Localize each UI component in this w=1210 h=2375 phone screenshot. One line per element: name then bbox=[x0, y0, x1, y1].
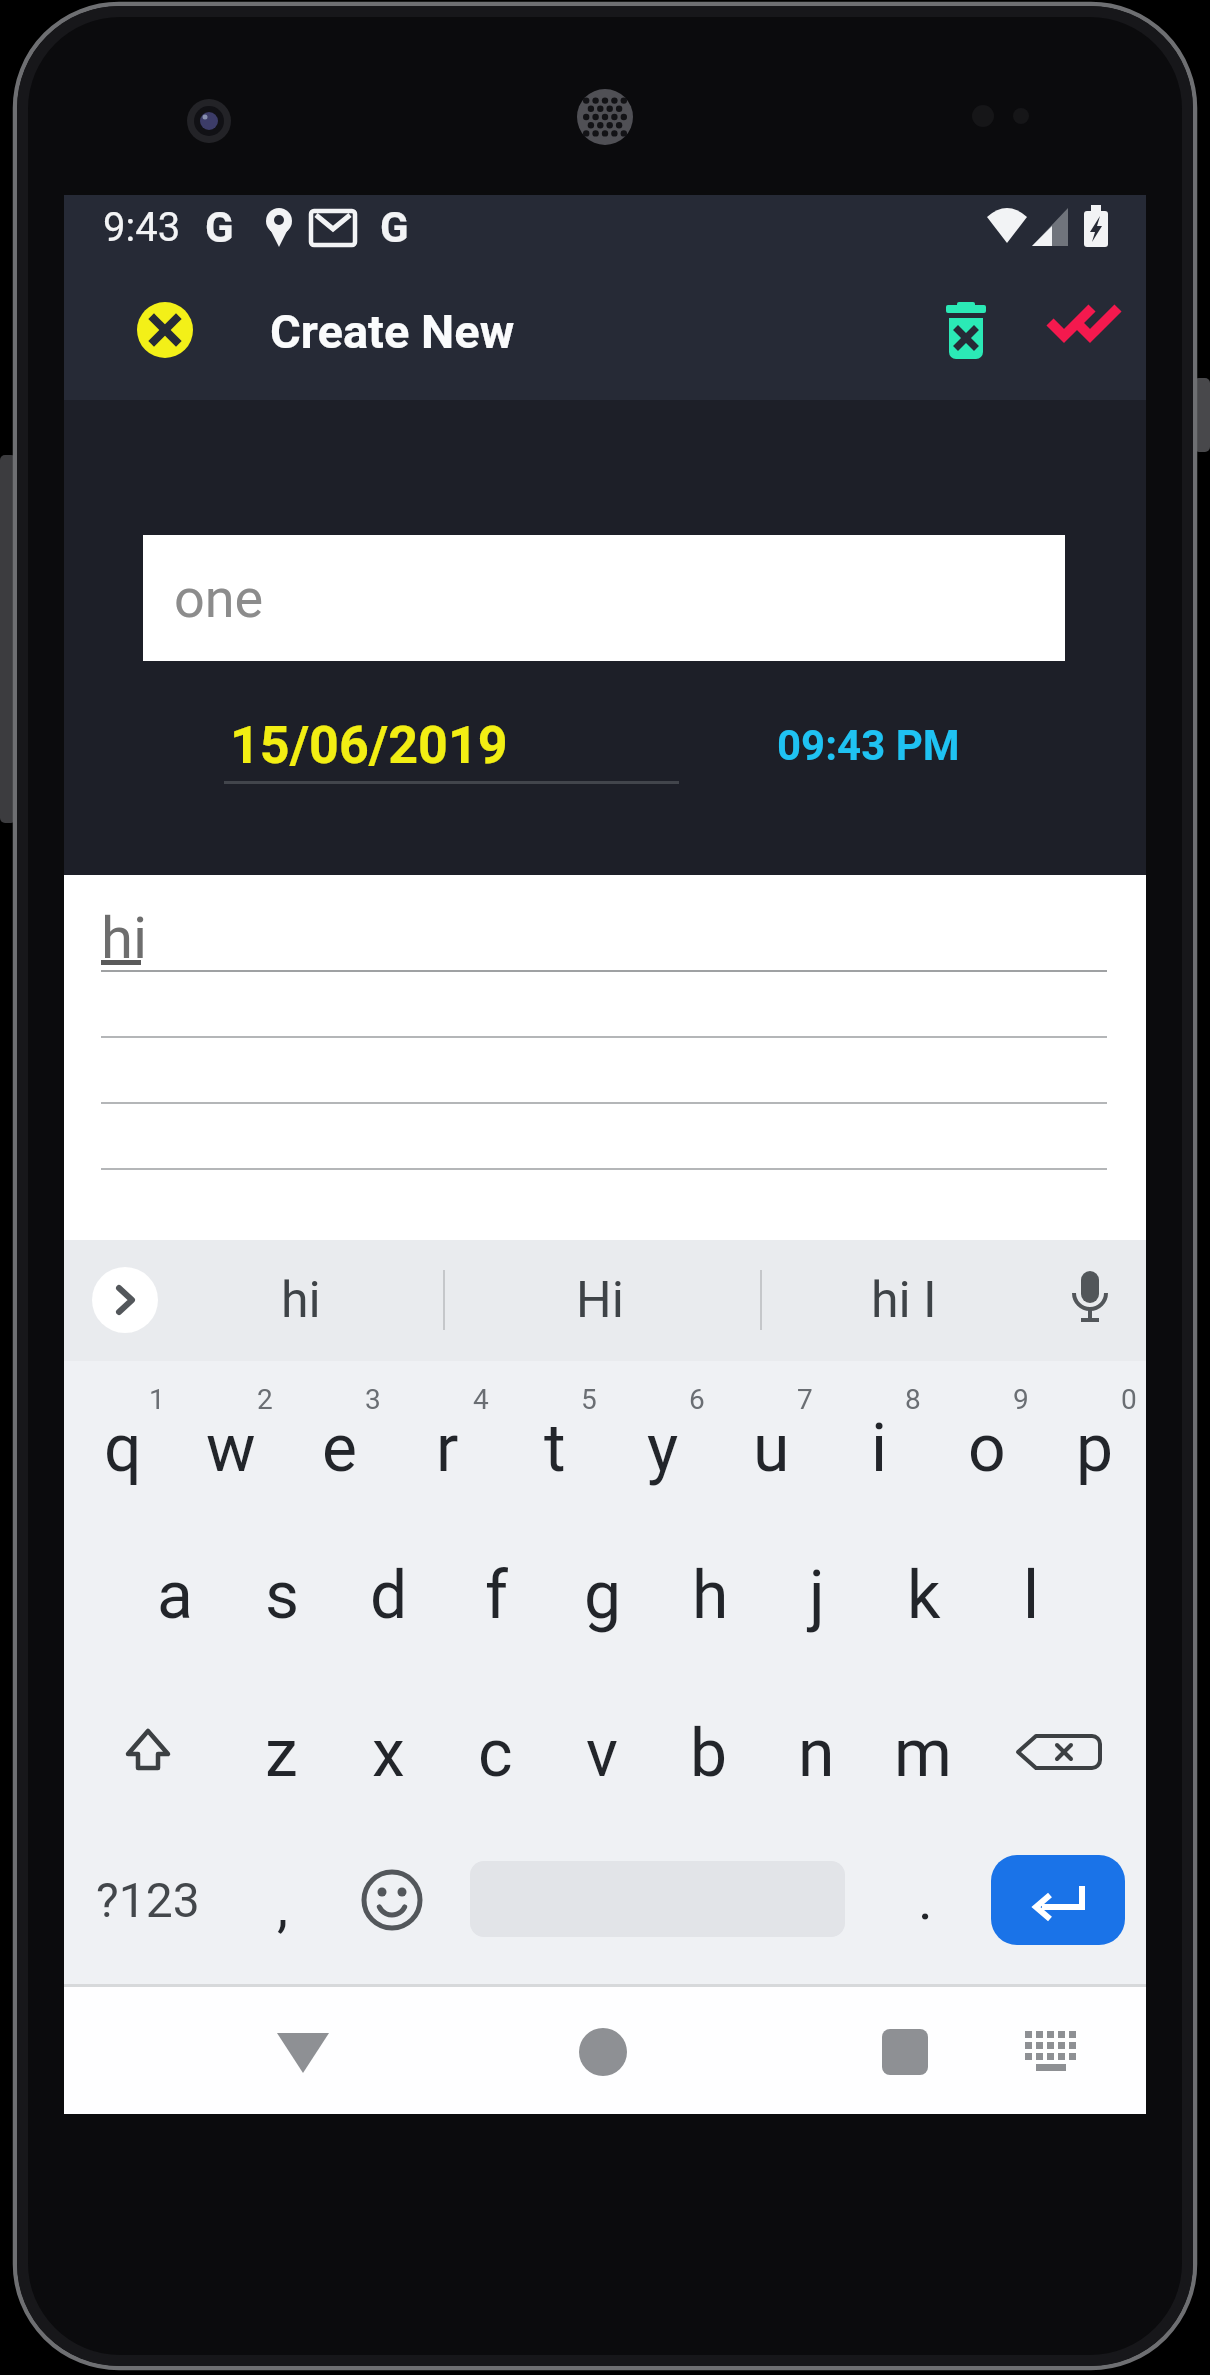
staticText: d bbox=[370, 1557, 408, 1634]
button[interactable]: l bbox=[978, 1543, 1084, 1647]
button[interactable]: p bbox=[1041, 1393, 1149, 1503]
staticText: c bbox=[478, 1715, 513, 1792]
button[interactable]: 09:43 PM bbox=[718, 700, 1018, 790]
button[interactable]: f bbox=[443, 1543, 549, 1647]
staticText: r bbox=[436, 1410, 459, 1487]
button[interactable]: z bbox=[228, 1701, 334, 1805]
staticText: 3 bbox=[365, 1383, 381, 1416]
staticText: 1 bbox=[149, 1383, 165, 1416]
staticText: l bbox=[1023, 1557, 1040, 1634]
staticText: u bbox=[753, 1410, 790, 1487]
button[interactable]: 15/06/2019 bbox=[219, 695, 519, 795]
staticText: w bbox=[206, 1410, 256, 1487]
staticText: s bbox=[265, 1557, 300, 1634]
button[interactable]: g bbox=[550, 1543, 656, 1647]
button[interactable]: hi bbox=[201, 1250, 401, 1350]
staticText: k bbox=[907, 1557, 941, 1634]
staticText: 7 bbox=[797, 1383, 813, 1416]
staticText: , bbox=[277, 1874, 289, 1940]
staticText: 9:43 bbox=[103, 204, 181, 251]
staticText: G bbox=[205, 203, 234, 252]
staticText: e bbox=[322, 1410, 357, 1487]
staticText: one bbox=[174, 567, 264, 630]
button[interactable]: hi I bbox=[804, 1250, 1004, 1350]
button[interactable]: v bbox=[549, 1701, 655, 1805]
button[interactable] bbox=[579, 2028, 627, 2076]
button[interactable]: m bbox=[870, 1701, 976, 1805]
button[interactable]: j bbox=[764, 1543, 870, 1647]
button[interactable] bbox=[1021, 2025, 1081, 2077]
staticText: v bbox=[586, 1715, 618, 1792]
staticText: 9 bbox=[1013, 1383, 1029, 1416]
staticText: G bbox=[380, 203, 409, 252]
button[interactable]: . bbox=[875, 1850, 975, 1950]
button[interactable] bbox=[1014, 1712, 1106, 1792]
staticText: i bbox=[871, 1410, 888, 1487]
button[interactable]: hi bbox=[101, 890, 501, 985]
button[interactable]: a bbox=[122, 1543, 228, 1647]
button[interactable]: e bbox=[285, 1393, 393, 1503]
button[interactable] bbox=[137, 302, 193, 358]
button[interactable]: s bbox=[229, 1543, 335, 1647]
staticText: x bbox=[372, 1715, 405, 1792]
staticText: . bbox=[918, 1867, 933, 1933]
staticText: a bbox=[157, 1557, 193, 1634]
button[interactable]: one bbox=[143, 535, 1065, 661]
staticText: n bbox=[798, 1715, 835, 1792]
staticText: 15/06/2019 bbox=[230, 715, 508, 776]
button[interactable] bbox=[1039, 295, 1129, 365]
staticText: ?123 bbox=[96, 1872, 200, 1928]
staticText: Create New bbox=[270, 304, 515, 359]
staticText: h bbox=[692, 1557, 729, 1634]
staticText: p bbox=[1076, 1410, 1114, 1487]
button[interactable]: t bbox=[501, 1393, 609, 1503]
button[interactable]: k bbox=[871, 1543, 977, 1647]
button[interactable]: ?123 bbox=[83, 1850, 213, 1950]
staticText: f bbox=[485, 1557, 508, 1634]
button[interactable]: o bbox=[933, 1393, 1041, 1503]
button[interactable] bbox=[358, 1866, 426, 1934]
button[interactable] bbox=[273, 2027, 333, 2077]
button[interactable]: h bbox=[657, 1543, 763, 1647]
button[interactable] bbox=[938, 301, 994, 361]
staticText: hi bbox=[281, 1271, 321, 1330]
button[interactable] bbox=[92, 1267, 158, 1333]
staticText: 8 bbox=[905, 1383, 921, 1416]
button[interactable]: r bbox=[393, 1393, 501, 1503]
button[interactable]: n bbox=[763, 1701, 869, 1805]
button[interactable] bbox=[108, 1712, 188, 1792]
staticText: 5 bbox=[581, 1383, 597, 1416]
staticText: b bbox=[690, 1715, 728, 1792]
staticText: Hi bbox=[576, 1271, 624, 1330]
button[interactable]: b bbox=[656, 1701, 762, 1805]
button[interactable] bbox=[1060, 1267, 1120, 1333]
staticText: j bbox=[809, 1557, 825, 1634]
staticText: o bbox=[968, 1410, 1006, 1487]
staticText: y bbox=[647, 1410, 679, 1487]
staticText: q bbox=[104, 1410, 142, 1487]
button[interactable]: w bbox=[177, 1393, 285, 1503]
button[interactable]: d bbox=[336, 1543, 442, 1647]
staticText: 09:43 PM bbox=[777, 721, 960, 770]
button[interactable] bbox=[991, 1855, 1125, 1945]
button[interactable]: Hi bbox=[500, 1250, 700, 1350]
button[interactable]: u bbox=[717, 1393, 825, 1503]
staticText: hi I bbox=[871, 1271, 937, 1330]
button[interactable]: c bbox=[442, 1701, 548, 1805]
button[interactable]: i bbox=[825, 1393, 933, 1503]
staticText: z bbox=[265, 1715, 298, 1792]
staticText: hi bbox=[101, 904, 148, 972]
button[interactable]: , bbox=[233, 1857, 333, 1957]
staticText: t bbox=[544, 1410, 566, 1487]
button[interactable]: q bbox=[69, 1393, 177, 1503]
staticText: m bbox=[894, 1715, 952, 1792]
staticText: 0 bbox=[1121, 1383, 1137, 1416]
staticText: g bbox=[584, 1557, 622, 1634]
button[interactable]: x bbox=[335, 1701, 441, 1805]
staticText: 4 bbox=[473, 1383, 489, 1416]
button[interactable]: y bbox=[609, 1393, 717, 1503]
staticText: 6 bbox=[689, 1383, 705, 1416]
button[interactable] bbox=[882, 2029, 928, 2075]
staticText: 2 bbox=[257, 1383, 273, 1416]
